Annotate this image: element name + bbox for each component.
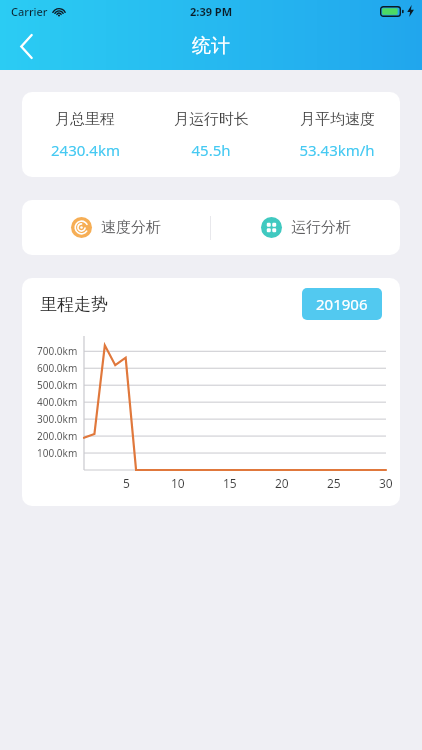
staticText: 400.0km: [37, 395, 78, 409]
button[interactable]: 速度分析: [22, 200, 210, 255]
staticText: 5: [123, 475, 130, 491]
staticText: 2:39 PM: [190, 4, 233, 19]
staticText: 月运行时长: [174, 110, 249, 129]
staticText: 15: [223, 475, 237, 491]
button[interactable]: 月平均速度: [274, 92, 400, 177]
staticText: 20: [275, 475, 289, 491]
staticText: 201906: [316, 294, 368, 314]
staticText: 月总里程: [55, 110, 115, 129]
button[interactable]: 月运行时长: [148, 92, 274, 177]
button[interactable]: 201906: [302, 288, 382, 320]
button[interactable]: 月总里程: [22, 92, 148, 177]
staticText: 运行分析: [291, 218, 351, 237]
staticText: 700.0km: [37, 344, 78, 358]
staticText: 200.0km: [37, 429, 78, 443]
staticText: 2430.4km: [51, 140, 120, 160]
staticText: 统计: [192, 34, 230, 58]
staticText: 600.0km: [37, 361, 78, 375]
button[interactable]: Back: [4, 24, 48, 68]
staticText: 53.43km/h: [299, 140, 375, 160]
staticText: Carrier: [11, 4, 48, 19]
staticText: 300.0km: [37, 412, 78, 426]
staticText: 速度分析: [101, 218, 161, 237]
staticText: 500.0km: [37, 378, 78, 392]
staticText: 100.0km: [37, 446, 78, 460]
staticText: 里程走势: [40, 294, 108, 315]
staticText: 月平均速度: [300, 110, 375, 129]
button[interactable]: 运行分析: [211, 200, 400, 255]
staticText: 10: [171, 475, 185, 491]
staticText: 25: [327, 475, 341, 491]
staticText: 45.5h: [191, 140, 231, 160]
staticText: 30: [379, 475, 393, 491]
